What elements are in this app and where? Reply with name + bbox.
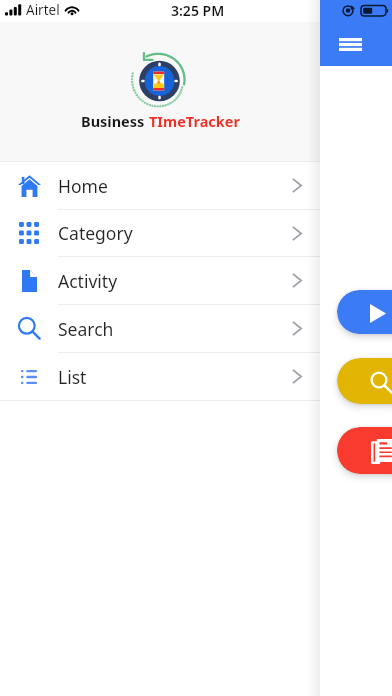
button[interactable]: Home [0,162,320,209]
staticText: Business [81,111,149,131]
button[interactable]: Search [0,305,320,352]
button[interactable]: Search [337,358,392,404]
staticText: 3:25 PM [171,1,225,20]
button[interactable]: Activity [0,257,320,304]
button[interactable]: Reports [337,427,392,474]
button[interactable]: Open navigation menu [332,30,368,58]
button[interactable]: Start timer [337,290,392,334]
staticText: TImeTracker [149,111,240,131]
button[interactable]: List [0,353,320,400]
staticText: Search [58,317,114,341]
staticText: Activity [58,269,118,293]
button[interactable]: Category [0,210,320,256]
staticText: Airtel [26,1,60,19]
staticText: List [58,365,87,389]
staticText: Category [58,221,133,245]
staticText: Home [58,174,108,198]
